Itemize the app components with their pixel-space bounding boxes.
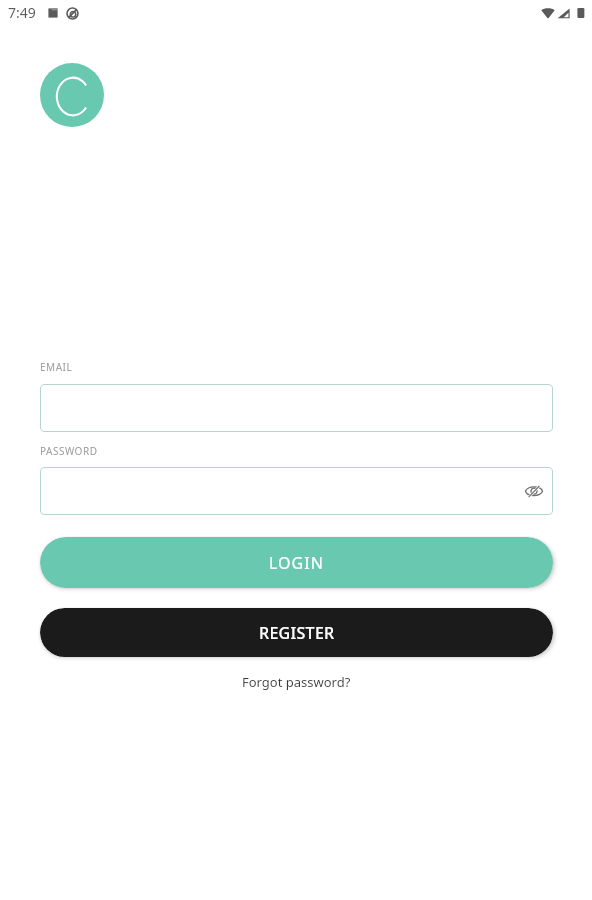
button[interactable]: LOGIN — [40, 537, 553, 588]
button[interactable]: REGISTER — [40, 608, 553, 657]
button[interactable]: Email field — [40, 384, 553, 432]
staticText: 7:49 — [8, 3, 36, 22]
other: Battery — [575, 7, 587, 19]
staticText: PASSWORD — [40, 444, 98, 458]
button[interactable]: Forgot password? — [236, 670, 357, 694]
staticText: Forgot password? — [242, 673, 351, 691]
button[interactable]: Show password — [520, 477, 548, 505]
other: Wi-Fi — [541, 6, 555, 20]
other: Notification — [47, 7, 59, 19]
other: Mobile signal — [557, 7, 570, 20]
staticText: LOGIN — [269, 552, 324, 574]
staticText: REGISTER — [259, 622, 335, 644]
button[interactable]: Password field — [40, 467, 553, 515]
other: App logo — [40, 63, 104, 127]
staticText: EMAIL — [40, 360, 73, 374]
other: Silent mode — [66, 7, 79, 20]
